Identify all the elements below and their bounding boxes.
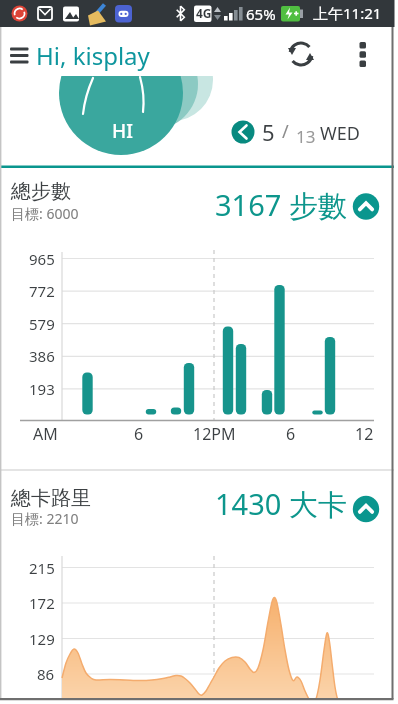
staticText: WED <box>320 121 360 146</box>
button[interactable] <box>348 38 378 70</box>
staticText: 1430 大卡 <box>215 484 347 524</box>
staticText: / <box>282 119 289 144</box>
button[interactable] <box>283 38 319 70</box>
button[interactable] <box>2 40 38 70</box>
staticText: 965 <box>29 249 55 269</box>
staticText: 215 <box>29 558 55 578</box>
staticText: 386 <box>29 346 55 366</box>
staticText: 3167 步數 <box>215 185 347 225</box>
staticText: 129 <box>29 629 55 649</box>
staticText: 6 <box>286 423 296 445</box>
button[interactable] <box>230 119 256 145</box>
staticText: 12PM <box>193 423 236 445</box>
staticText: 579 <box>29 314 55 334</box>
button[interactable] <box>355 495 379 519</box>
staticText: 172 <box>29 593 55 613</box>
staticText: AM <box>33 423 58 445</box>
staticText: 目標: 6000 <box>11 204 79 223</box>
staticText: 65% <box>246 4 276 24</box>
staticText: 772 <box>29 281 55 301</box>
staticText: 上午11:21 <box>313 3 382 23</box>
staticText: 5 <box>262 117 275 147</box>
button[interactable] <box>355 192 379 216</box>
staticText: Hi, kisplay <box>36 39 150 72</box>
staticText: 4G <box>196 5 212 21</box>
staticText: 6 <box>134 423 144 445</box>
staticText: 13 <box>296 125 316 148</box>
staticText: 86 <box>37 664 55 684</box>
staticText: HI <box>112 118 133 144</box>
staticText: 目標: 2210 <box>11 509 79 528</box>
staticText: 193 <box>29 379 55 399</box>
staticText: 總步數 <box>11 179 71 204</box>
staticText: 12 <box>355 423 374 445</box>
staticText: 總卡路里 <box>11 486 91 511</box>
